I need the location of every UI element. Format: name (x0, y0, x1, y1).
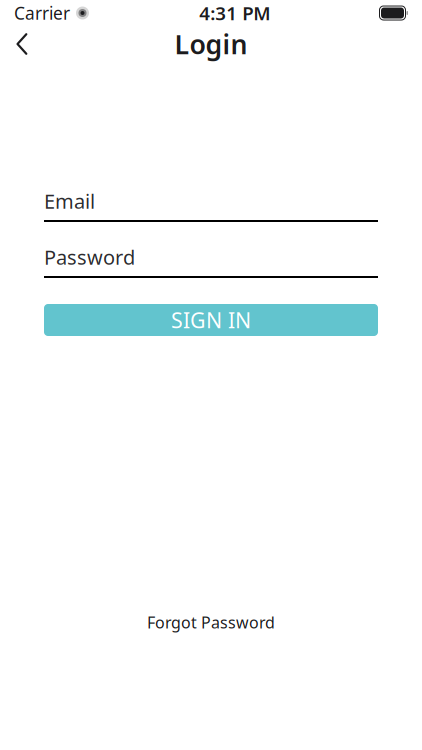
staticText: Password (44, 244, 135, 270)
staticText: Forgot Password (147, 612, 275, 633)
button[interactable]: Forgot Password (135, 606, 287, 639)
staticText: Login (174, 26, 247, 62)
staticText: 4:31 PM (199, 1, 270, 25)
staticText: SIGN IN (171, 306, 251, 334)
button[interactable]: SIGN IN (44, 304, 378, 336)
staticText: Carrier (14, 1, 70, 24)
button[interactable]: Back (0, 26, 44, 62)
staticText: Email (44, 188, 95, 214)
